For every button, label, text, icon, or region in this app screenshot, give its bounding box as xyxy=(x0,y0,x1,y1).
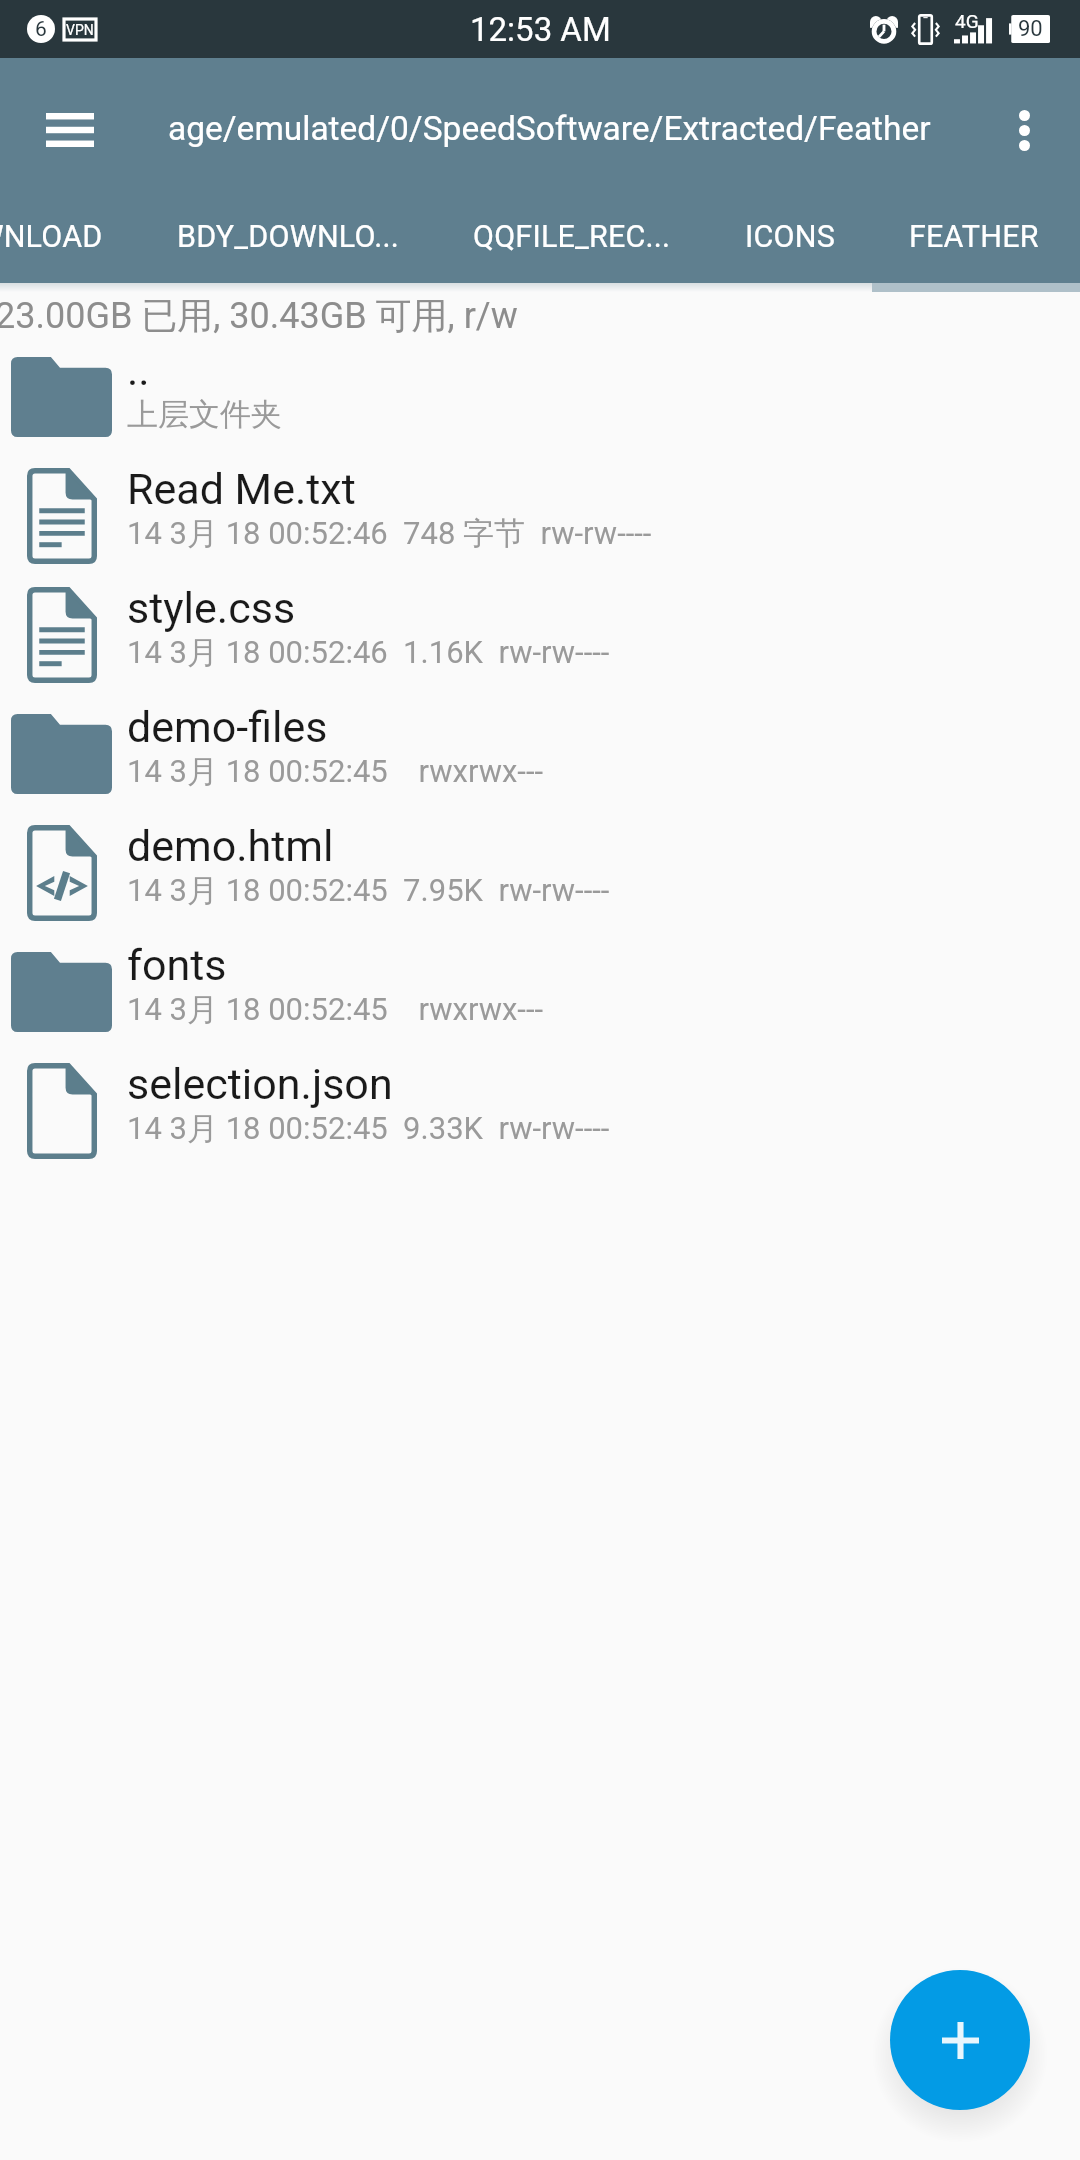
staticText: DOWNLOAD xyxy=(0,219,103,255)
button[interactable]: style.css xyxy=(0,579,1080,698)
staticText: .. xyxy=(127,345,150,395)
staticText: 23.00GB 已用, 30.43GB 可用, r/w xyxy=(0,293,518,338)
staticText: 14 3月 18 00:52:45 9.33K rw-rw---- xyxy=(127,1109,610,1148)
button[interactable]: Read Me.txt xyxy=(0,460,1080,579)
button[interactable]: age/emulated/0/SpeedSoftware/Extracted/F… xyxy=(168,109,958,148)
staticText: FEATHER xyxy=(909,219,1039,255)
staticText: age/emulated/0/SpeedSoftware/Extracted/F… xyxy=(168,109,931,148)
button[interactable]: demo.html xyxy=(0,817,1080,936)
staticText: demo.html xyxy=(127,821,334,871)
staticText: selection.json xyxy=(127,1059,393,1109)
staticText: 14 3月 18 00:52:45 rwxrwx--- xyxy=(127,990,544,1029)
button[interactable]: .. xyxy=(0,341,1080,460)
button[interactable]: fonts xyxy=(0,936,1080,1055)
staticText: BDY_DOWNLO... xyxy=(177,219,399,255)
button[interactable]: ICONS xyxy=(708,190,872,283)
staticText: QQFILE_REC... xyxy=(473,219,671,255)
staticText: ICONS xyxy=(745,219,835,255)
button[interactable]: BDY_DOWNLO... xyxy=(140,190,436,283)
staticText: 上层文件夹 xyxy=(127,395,282,434)
staticText: 90 xyxy=(1018,16,1043,42)
button[interactable]: Add xyxy=(890,1970,1030,2110)
button[interactable]: demo-files xyxy=(0,698,1080,817)
staticText: 6 xyxy=(35,17,47,42)
staticText: VPN xyxy=(66,22,94,38)
button[interactable]: Open navigation drawer xyxy=(22,82,118,178)
staticText: Read Me.txt xyxy=(127,464,356,514)
button[interactable]: More options xyxy=(976,82,1072,178)
staticText: 12:53 AM xyxy=(470,10,611,49)
staticText: 14 3月 18 00:52:45 rwxrwx--- xyxy=(127,752,544,791)
button[interactable]: FEATHER xyxy=(872,190,1076,283)
staticText: 14 3月 18 00:52:46 1.16K rw-rw---- xyxy=(127,633,610,672)
button[interactable]: QQFILE_REC... xyxy=(436,190,708,283)
button[interactable]: selection.json xyxy=(0,1055,1080,1174)
staticText: style.css xyxy=(127,583,296,633)
staticText: 4G xyxy=(955,10,979,32)
button[interactable]: DOWNLOAD xyxy=(0,190,140,283)
staticText: demo-files xyxy=(127,702,328,752)
staticText: 14 3月 18 00:52:46 748 字节 rw-rw---- xyxy=(127,514,652,553)
staticText: fonts xyxy=(127,940,227,990)
staticText: 14 3月 18 00:52:45 7.95K rw-rw---- xyxy=(127,871,610,910)
